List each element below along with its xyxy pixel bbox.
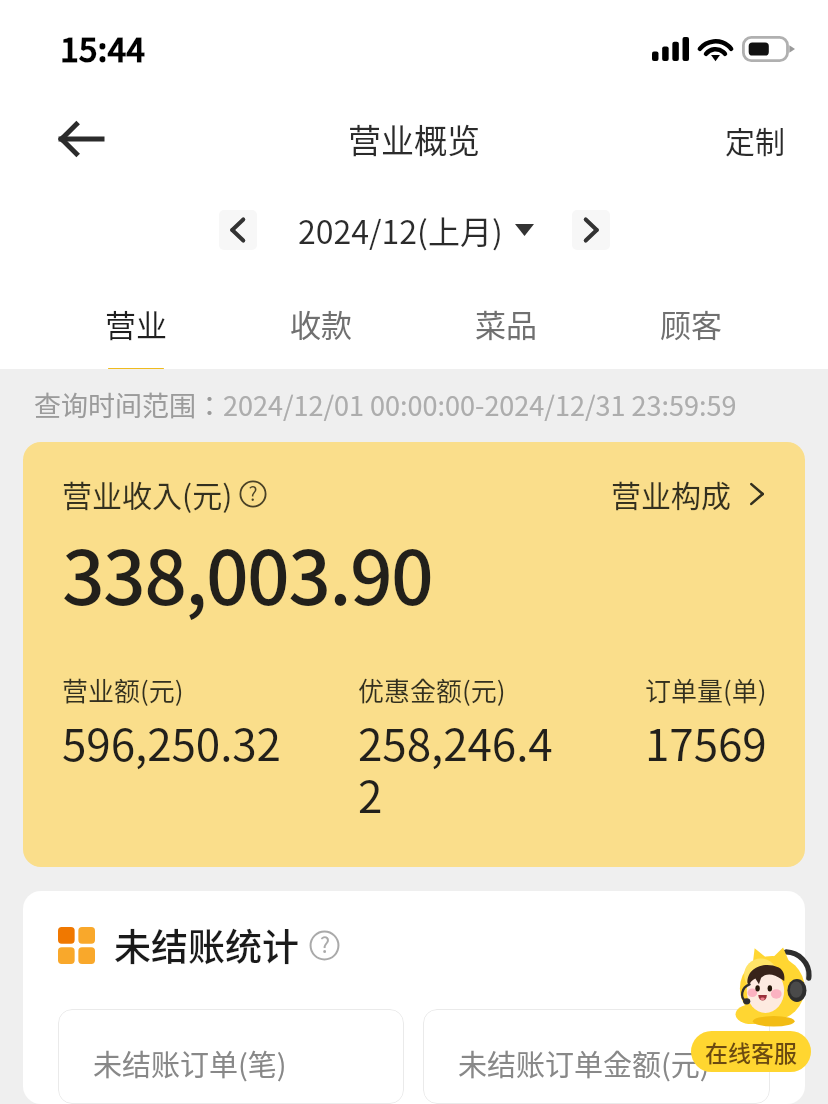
staticText: 订单量(单) <box>645 671 767 709</box>
staticText: 2024/12/01 00:00:00-2024/12/31 23:59:59 <box>223 385 737 424</box>
staticText: 未结账订单(笔) <box>93 1042 287 1084</box>
staticText: 营业额(元) <box>62 671 184 709</box>
button[interactable]: 营业 <box>43 269 228 369</box>
button[interactable]: 未结账订单(笔) <box>58 1009 404 1104</box>
staticText: 未结账订单金额(元) <box>458 1042 710 1084</box>
button[interactable]: Next month <box>572 210 610 250</box>
staticText: 258,246.42 <box>358 710 556 823</box>
staticText: 收款 <box>290 301 352 346</box>
staticText: 顾客 <box>660 301 722 346</box>
button[interactable]: 未结账订单金额(元) <box>423 1009 770 1104</box>
button[interactable]: 2024/12(上月) <box>298 207 534 253</box>
staticText: 未结账统计 <box>114 918 299 972</box>
staticText: 15:44 <box>60 24 146 72</box>
staticText: 2024/12(上月) <box>298 207 503 253</box>
button[interactable]: 收款 <box>228 269 413 369</box>
staticText: 查询时间范围： <box>34 385 223 424</box>
staticText: 菜品 <box>475 301 537 346</box>
staticText: 营业收入(元) <box>62 472 233 515</box>
button[interactable]: Back <box>50 108 112 170</box>
button[interactable]: 在线客服 <box>691 1031 811 1072</box>
button[interactable]: 营业收入(元) <box>23 442 805 867</box>
staticText: 营业 <box>105 301 167 346</box>
staticText: ? <box>248 479 258 507</box>
staticText: ? <box>320 929 330 960</box>
staticText: 338,003.90 <box>62 518 433 627</box>
staticText: 优惠金额(元) <box>358 671 506 709</box>
staticText: 17569 <box>645 710 767 771</box>
staticText: 营业概览 <box>348 115 480 163</box>
staticText: 596,250.32 <box>62 710 281 771</box>
staticText: 定制 <box>725 118 785 161</box>
button[interactable]: 顾客 <box>598 269 783 369</box>
button[interactable]: Previous month <box>219 210 257 250</box>
button[interactable]: 菜品 <box>413 269 598 369</box>
button[interactable]: 定制 <box>711 108 799 171</box>
staticText: 营业构成 <box>611 472 731 515</box>
button[interactable]: 营业构成 <box>611 472 770 515</box>
staticText: 在线客服 <box>705 1035 797 1068</box>
